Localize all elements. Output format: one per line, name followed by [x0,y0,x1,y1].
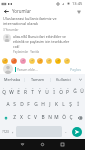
button[interactable]: React [64,58,70,64]
button[interactable]: React [20,58,26,64]
button[interactable]: L [60,99,67,110]
button[interactable]: . [63,125,68,138]
button[interactable]: 7 [43,86,50,97]
staticText: etkinlik ve paylasim icin tesekkurler [13,39,70,44]
staticText: H [41,101,45,108]
button[interactable]: React [2,58,8,64]
button[interactable]: Ğ [71,86,78,97]
staticText: 3 Yorumlar [3,28,19,32]
staticText: . [65,128,67,135]
button[interactable]: More suggestions [76,74,85,85]
staticText: Ü [80,88,84,95]
staticText: C [27,114,31,121]
staticText: 9 [60,86,62,89]
button[interactable]: Sort [75,8,82,15]
button[interactable]: 2 [8,86,15,97]
staticText: Ş [69,101,72,108]
staticText: Y [38,89,41,96]
button[interactable]: 6 [36,86,43,97]
button[interactable]: Shift [0,112,11,123]
button[interactable]: X [18,112,25,123]
button[interactable]: Back [17,139,28,150]
staticText: G [34,101,38,108]
staticText: 7 [46,86,48,89]
staticText: B [41,114,45,121]
button[interactable]: Paylas [69,67,82,72]
button[interactable]: Ç [67,112,74,123]
staticText: Q [2,89,6,96]
staticText: D [20,101,24,108]
button[interactable]: J [46,99,53,110]
button[interactable]: Ü [78,86,85,97]
staticText: alias.n84 Bunuicilari etkinlikler ve [13,34,66,39]
button[interactable]: React [55,58,61,64]
button[interactable]: B [39,112,46,123]
staticText: 3 [18,86,20,89]
staticText: Uluslararasi kullanicilarimiz ve partner… [3,16,81,21]
button[interactable]: İ [74,99,81,110]
button[interactable]: Ö [60,112,67,123]
button[interactable]: Send [72,127,82,137]
button[interactable]: Tamam [25,74,50,85]
staticText: 2 [11,86,13,89]
button[interactable]: React [11,58,17,64]
button[interactable]: Home [37,139,48,150]
staticText: Paylasimlar Yanitla [13,50,40,54]
staticText: R [24,89,27,96]
staticText: Ğ [73,88,77,95]
staticText: 8 [53,86,55,89]
button[interactable]: 5 [29,86,36,97]
button[interactable]: 0 [64,86,71,97]
button[interactable]: 9 [57,86,64,97]
button[interactable]: Recents [57,139,68,150]
button[interactable]: , [11,125,15,138]
button[interactable]: Merhaba [0,74,24,85]
staticText: F [27,101,30,108]
staticText: L [62,101,65,108]
staticText: cok! [13,44,20,49]
staticText: İ [77,101,79,108]
staticText: N [48,114,52,121]
button[interactable]: alias.n84 Bunuicilari etkinlikler ve [0,34,85,54]
button[interactable]: 1 [0,86,8,97]
staticText: J [49,101,51,108]
button[interactable]: H [39,99,46,110]
button[interactable]: Ş [67,99,74,110]
button[interactable]: 3 [15,86,22,97]
staticText: W [9,89,14,96]
button[interactable]: React [37,58,43,64]
button[interactable]: Kullanici [51,74,76,85]
button[interactable]: F [25,99,32,110]
button[interactable]: S [11,99,18,110]
staticText: M [54,114,59,121]
button[interactable]: React [46,58,52,64]
button[interactable]: M [53,112,60,123]
staticText: K [55,101,58,108]
button[interactable]: K [53,99,60,110]
button[interactable]: React [29,58,35,64]
button[interactable]: D [18,99,25,110]
button[interactable]: Z [11,112,18,123]
staticText: A [6,101,10,108]
staticText: Z [13,114,16,121]
staticText: T [31,89,34,96]
staticText: I [53,89,55,96]
staticText: O [59,89,63,96]
button[interactable]: C [25,112,32,123]
button[interactable]: 8 [50,86,57,97]
staticText: Kullanici [56,77,71,82]
button[interactable]: Back [2,7,10,15]
staticText: 4 [25,86,27,89]
button[interactable]: N [46,112,53,123]
staticText: Ç [69,114,73,121]
staticText: X [20,114,23,121]
button[interactable]: 4 [22,86,29,97]
staticText: international olarak [3,21,39,26]
button[interactable]: V [32,112,39,123]
button[interactable]: G [32,99,39,110]
staticText: 13:45 [72,1,83,6]
button[interactable]: A [4,99,11,110]
button[interactable]: Backspace [74,112,85,123]
button[interactable]: ?123 [0,125,11,138]
